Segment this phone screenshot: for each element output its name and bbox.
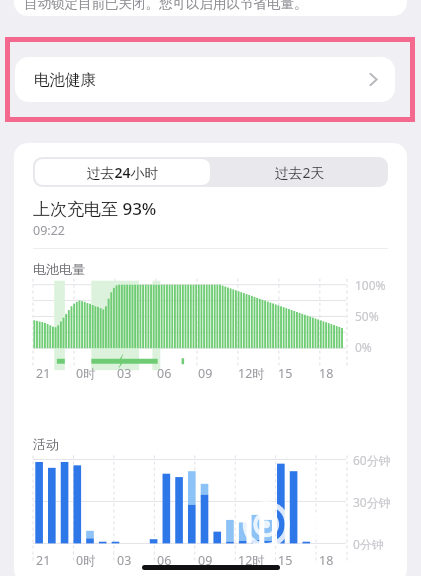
staticText: 过去2天: [274, 163, 325, 182]
staticText: 电池健康: [34, 70, 96, 90]
staticText: 60分钟: [353, 452, 391, 468]
staticText: 30分钟: [353, 494, 391, 510]
button[interactable]: 过去24小时: [35, 159, 210, 185]
staticText: 0%: [355, 339, 372, 355]
staticText: 06: [157, 365, 172, 382]
staticText: 过去24小时: [86, 163, 159, 182]
button[interactable]: 过去2天: [212, 159, 386, 185]
staticText: 21: [36, 552, 51, 569]
staticText: 09: [198, 552, 213, 569]
staticText: 0分钟: [353, 536, 384, 552]
staticText: 电池电量: [33, 261, 85, 277]
button[interactable]: 电池健康: [15, 57, 395, 102]
staticText: 18: [319, 552, 334, 569]
staticText: 15: [278, 365, 293, 382]
staticText: 自动锁定目前已关闭。您可以启用以节省电量。: [24, 0, 308, 12]
staticText: 03: [117, 365, 132, 382]
staticText: 100%: [355, 277, 386, 293]
staticText: 活动: [33, 436, 59, 452]
staticText: 18: [319, 365, 334, 382]
staticText: 21: [36, 365, 51, 382]
staticText: 03: [117, 552, 132, 569]
staticText: 上次充电至 93%: [33, 197, 157, 220]
staticText: 09: [198, 365, 213, 382]
staticText: 09:22: [33, 222, 65, 239]
staticText: 12时: [238, 365, 265, 382]
staticText: 0时: [76, 365, 96, 382]
staticText: 15: [278, 552, 293, 569]
staticText: 50%: [355, 308, 379, 324]
staticText: 12时: [238, 552, 265, 569]
staticText: 06: [157, 552, 172, 569]
staticText: 0时: [76, 552, 96, 569]
